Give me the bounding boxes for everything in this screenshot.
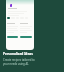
staticText: Personalised Ideas bbox=[3, 52, 33, 56]
button[interactable] bbox=[7, 23, 18, 38]
other: App logo bbox=[10, 4, 12, 7]
staticText: Create recipes tailored to your needs us… bbox=[3, 58, 35, 66]
button[interactable]: All bbox=[7, 17, 10, 19]
button[interactable] bbox=[20, 23, 32, 38]
